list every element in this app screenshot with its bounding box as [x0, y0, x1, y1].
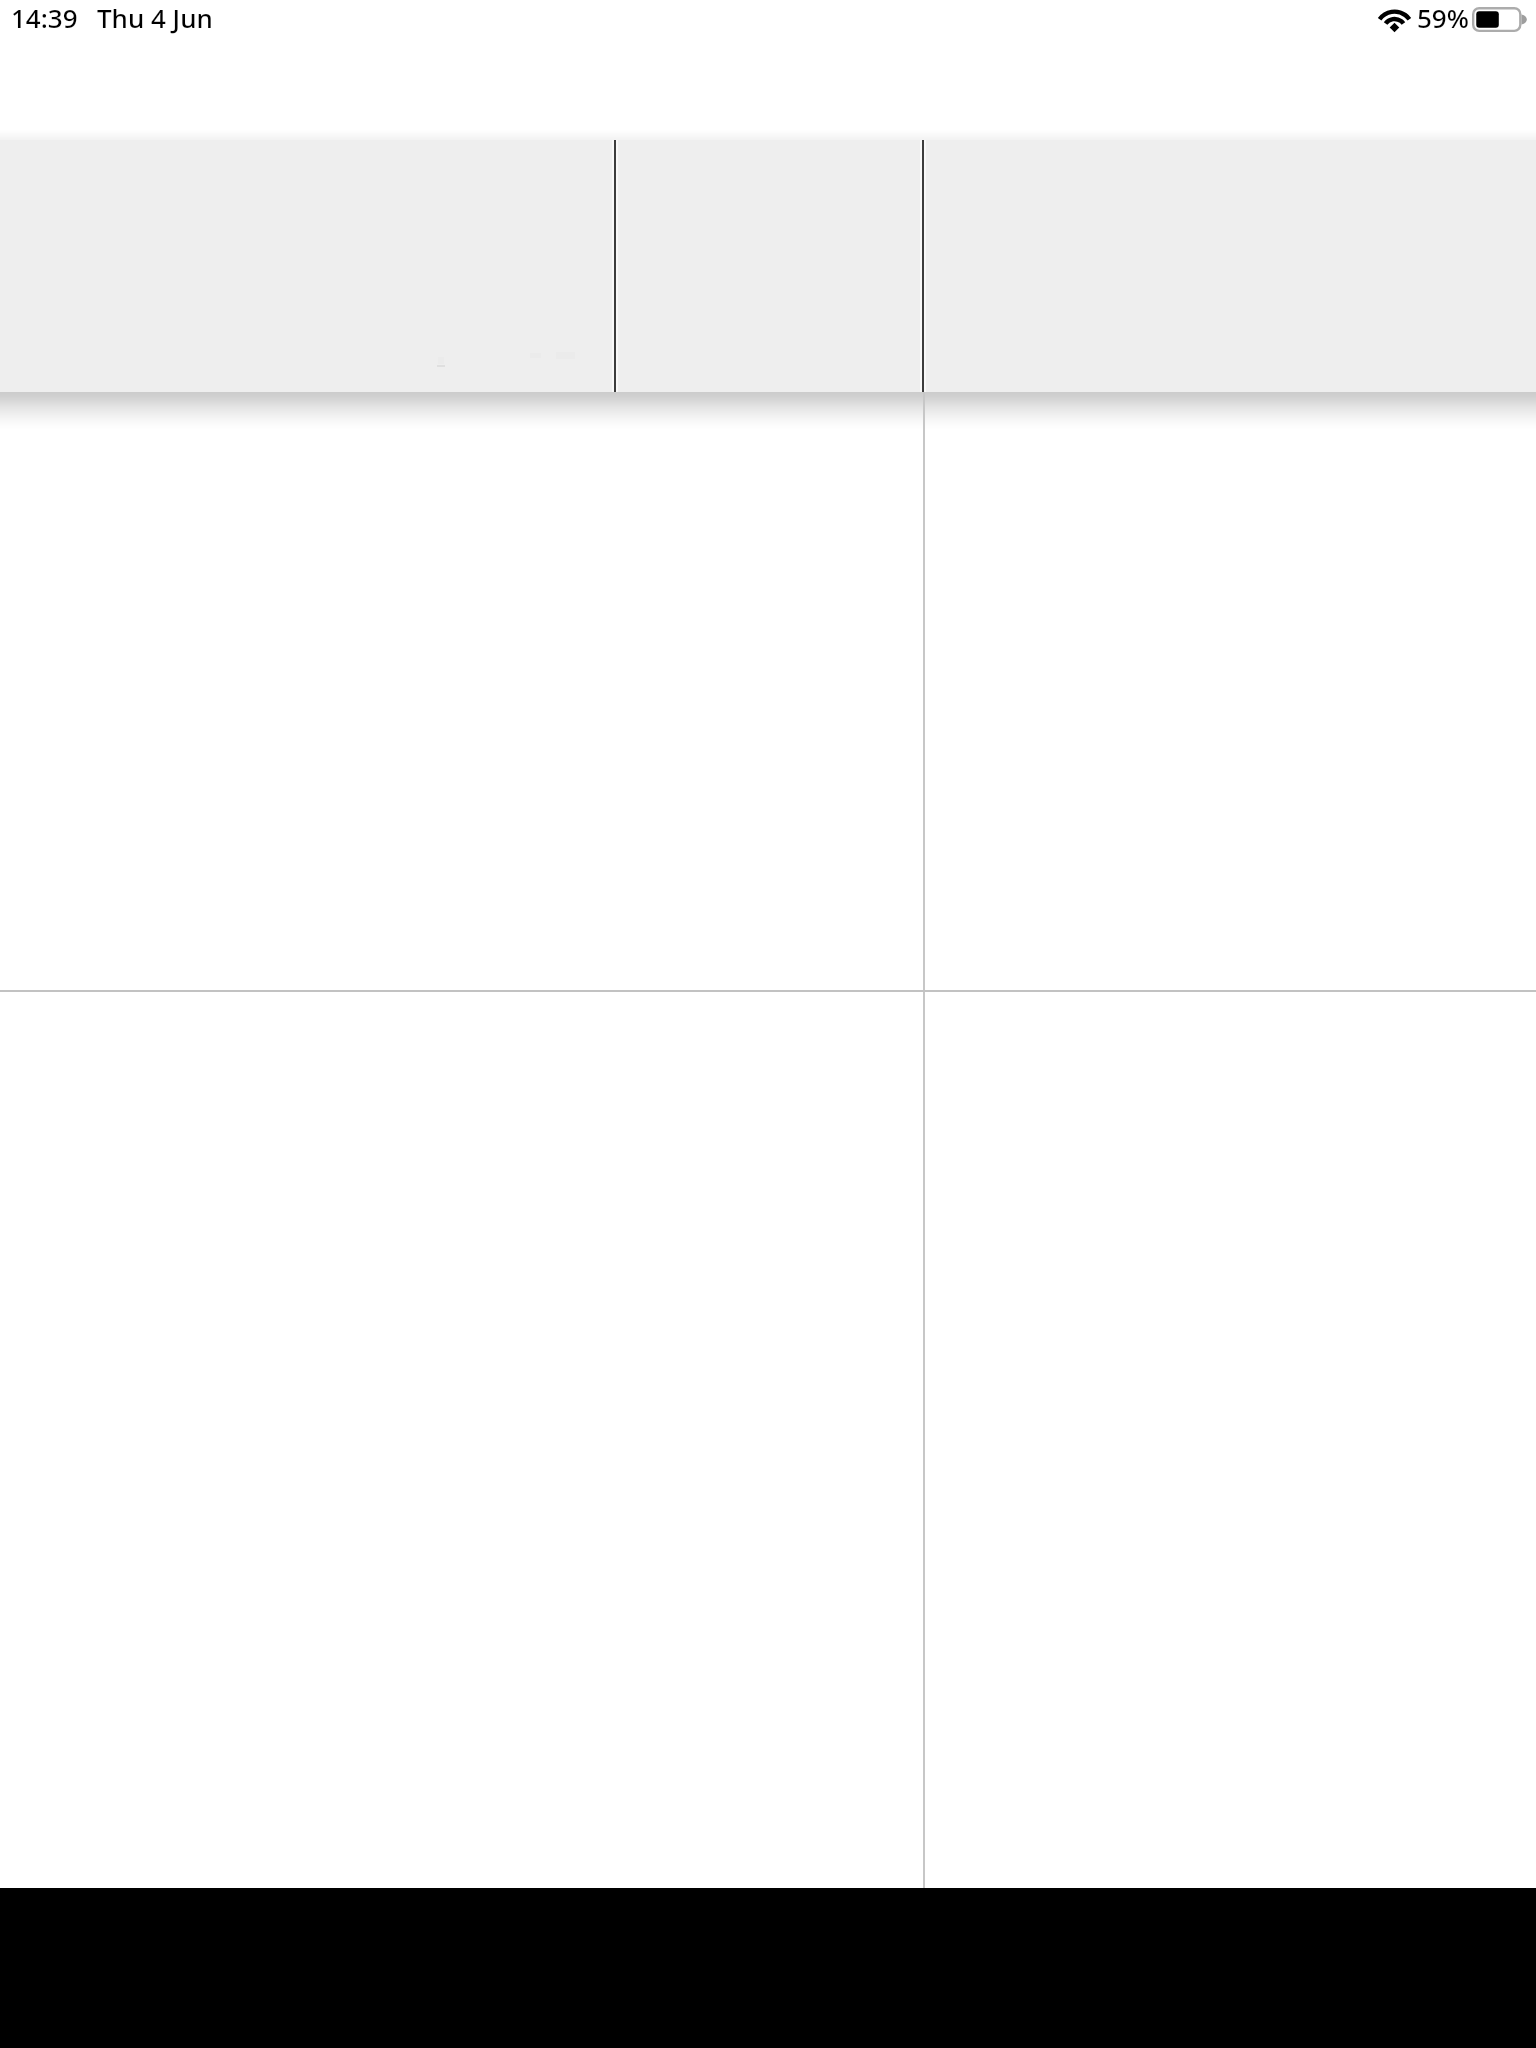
staticText: Thu 4 Jun	[97, 0, 213, 35]
staticText: 14:39	[11, 0, 78, 35]
other: Wi-Fi connected	[1380, 7, 1409, 30]
other: Battery 59 percent	[1472, 7, 1527, 32]
button[interactable]: Third tab	[921, 140, 1536, 392]
staticText: 59%	[1417, 0, 1469, 35]
button[interactable]: Second tab	[613, 140, 921, 392]
